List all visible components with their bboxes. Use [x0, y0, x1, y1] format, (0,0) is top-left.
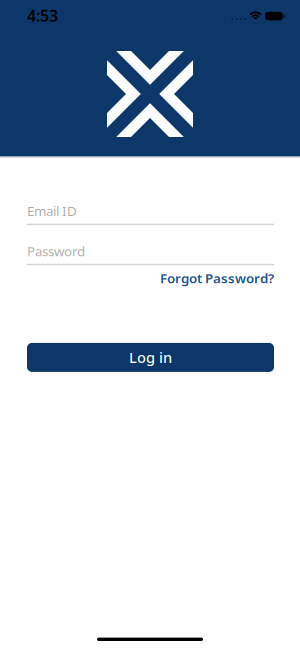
staticText: Email ID	[27, 202, 77, 220]
staticText: Log in	[129, 348, 172, 367]
staticText: Forgot Password?	[160, 269, 274, 287]
button[interactable]: Email ID	[27, 202, 274, 225]
button[interactable]: Log in	[27, 343, 274, 372]
staticText: 4:53	[27, 5, 58, 26]
button[interactable]: Password	[27, 242, 274, 265]
button[interactable]: Forgot Password?	[160, 269, 274, 287]
staticText: Password	[27, 242, 85, 260]
